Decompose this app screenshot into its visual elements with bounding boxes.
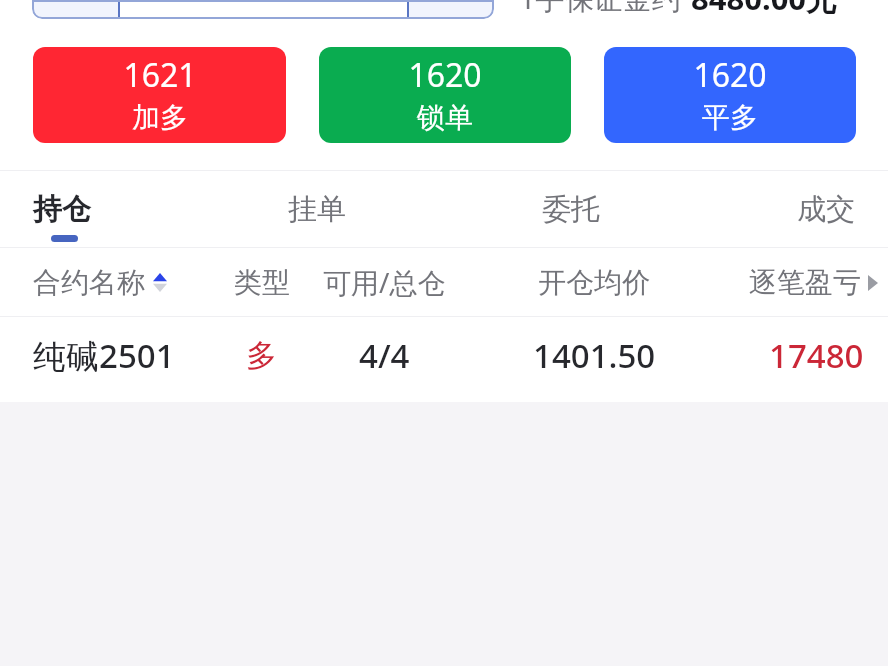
staticText: 纯碱2501 (33, 333, 175, 378)
staticText: 挂单 (288, 191, 346, 228)
button[interactable]: 委托 (542, 171, 600, 247)
staticText: 1620 (408, 53, 482, 97)
button[interactable]: Increase quantity (409, 0, 494, 19)
button[interactable]: 逐笔盈亏 (724, 265, 878, 300)
button[interactable]: 合约名称 (33, 265, 218, 300)
staticText: 逐笔盈亏 (749, 265, 861, 300)
button[interactable]: 纯碱2501 (0, 317, 888, 402)
button[interactable] (120, 0, 407, 19)
staticText: 类型 (234, 265, 290, 300)
button[interactable]: 成交 (797, 171, 855, 247)
other: More columns (868, 275, 878, 291)
button[interactable]: 持仓 (33, 171, 91, 247)
staticText: 合约名称 (33, 265, 145, 300)
staticText: 委托 (542, 191, 600, 228)
button[interactable]: Decrease quantity (32, 0, 118, 19)
staticText: 1620 (693, 53, 767, 97)
staticText: 开仓均价 (538, 265, 650, 300)
staticText: 锁单 (417, 100, 473, 135)
other: Sort by contract name (153, 273, 167, 292)
staticText: 成交 (797, 191, 855, 228)
staticText: 加多 (132, 100, 188, 135)
staticText: 可用/总仓 (323, 263, 446, 301)
staticText: 4/4 (359, 333, 410, 378)
staticText: 1621 (123, 53, 197, 97)
button[interactable]: 1621 (33, 47, 286, 143)
button[interactable]: 1620 (604, 47, 856, 143)
staticText: 多 (246, 336, 277, 375)
staticText: 17480 (769, 333, 864, 378)
button[interactable]: 1620 (319, 47, 571, 143)
button[interactable]: 挂单 (288, 171, 346, 247)
staticText: 平多 (702, 100, 758, 135)
staticText: 持仓 (33, 191, 91, 228)
staticText: 1401.50 (533, 333, 656, 378)
